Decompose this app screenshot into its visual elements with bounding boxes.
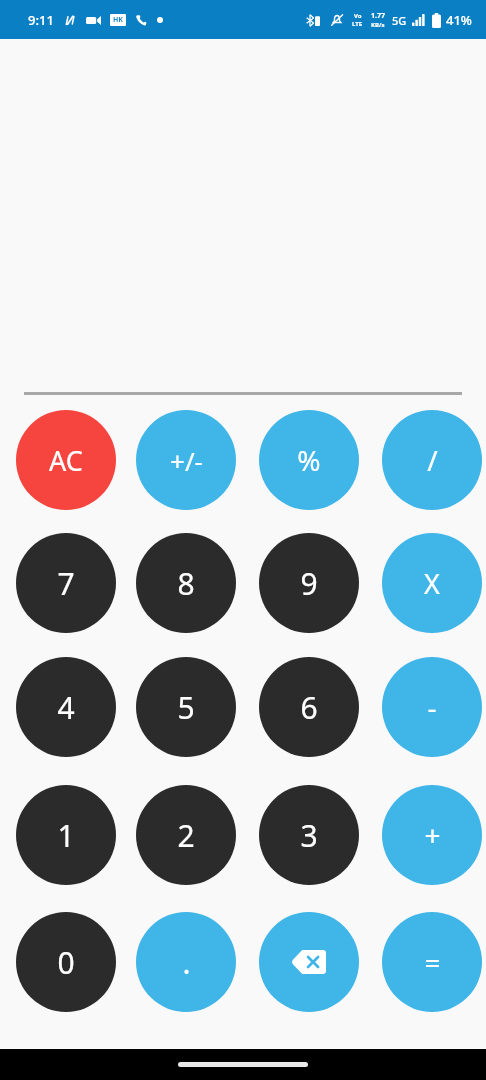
- button[interactable]: =: [382, 912, 482, 1012]
- button[interactable]: +: [382, 785, 482, 885]
- staticText: 2: [177, 815, 195, 856]
- staticText: 1: [57, 815, 75, 856]
- staticText: 7: [57, 563, 75, 604]
- button[interactable]: +/-: [136, 410, 236, 510]
- staticText: AC: [49, 442, 83, 479]
- staticText: 6: [300, 687, 318, 728]
- button[interactable]: %: [259, 410, 359, 510]
- staticText: 4: [57, 687, 75, 728]
- button[interactable]: 0: [16, 912, 116, 1012]
- staticText: .: [182, 942, 191, 983]
- staticText: X: [424, 565, 440, 602]
- staticText: KB/s: [371, 21, 385, 29]
- button[interactable]: AC: [16, 410, 116, 510]
- button[interactable]: 9: [259, 533, 359, 633]
- button[interactable]: 3: [259, 785, 359, 885]
- staticText: 8: [177, 563, 195, 604]
- button[interactable]: 4: [16, 657, 116, 757]
- button[interactable]: 8: [136, 533, 236, 633]
- button[interactable]: 7: [16, 533, 116, 633]
- staticText: 5: [177, 687, 195, 728]
- staticText: 0: [57, 942, 75, 983]
- button[interactable]: X: [382, 533, 482, 633]
- staticText: 1.77: [371, 11, 385, 21]
- staticText: -: [427, 688, 437, 726]
- staticText: 41%: [446, 11, 472, 29]
- button[interactable]: 5: [136, 657, 236, 757]
- staticText: %: [297, 441, 321, 479]
- staticText: 5G: [392, 13, 407, 28]
- staticText: Vo: [354, 12, 362, 20]
- staticText: HK: [113, 15, 124, 25]
- staticText: 3: [300, 815, 318, 856]
- staticText: LTE: [352, 20, 363, 28]
- staticText: 9: [300, 563, 318, 604]
- button[interactable]: 1: [16, 785, 116, 885]
- staticText: +/-: [170, 443, 203, 478]
- staticText: +: [424, 816, 441, 854]
- staticText: 9:11: [28, 11, 54, 29]
- button[interactable]: 2: [136, 785, 236, 885]
- staticText: /: [427, 441, 438, 479]
- button[interactable]: /: [382, 410, 482, 510]
- button[interactable]: Backspace: [259, 912, 359, 1012]
- button[interactable]: -: [382, 657, 482, 757]
- button[interactable]: .: [136, 912, 236, 1012]
- button[interactable]: 6: [259, 657, 359, 757]
- staticText: =: [424, 943, 441, 981]
